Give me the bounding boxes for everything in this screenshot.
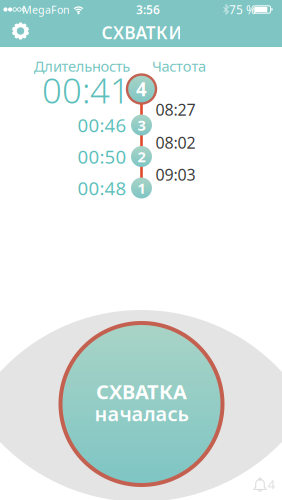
staticText: 08:02	[155, 132, 195, 153]
staticText: 00:41	[42, 67, 130, 113]
button[interactable]: СХВАТКА	[58, 321, 224, 487]
staticText: 75 %	[229, 1, 256, 17]
staticText: 00:46	[77, 113, 126, 137]
staticText: началась	[94, 400, 188, 427]
staticText: 08:27	[155, 99, 195, 120]
button[interactable]: Настройки	[11, 21, 30, 40]
staticText: MegaFon	[22, 2, 70, 17]
staticText: 3:56	[136, 1, 160, 17]
staticText: Длительность	[34, 56, 130, 76]
staticText: Частота	[152, 56, 206, 76]
staticText: 09:03	[155, 164, 195, 185]
staticText: СХВАТКИ	[102, 21, 181, 44]
staticText: 3	[137, 115, 145, 135]
staticText: 2	[137, 147, 145, 166]
staticText: 1	[137, 178, 145, 198]
staticText: СХВАТКА	[96, 378, 187, 405]
staticText: 4	[267, 475, 275, 493]
button[interactable]: Напоминания	[253, 475, 275, 493]
staticText: 4	[136, 77, 147, 101]
staticText: 00:50	[77, 144, 126, 169]
staticText: 00:48	[77, 176, 126, 200]
